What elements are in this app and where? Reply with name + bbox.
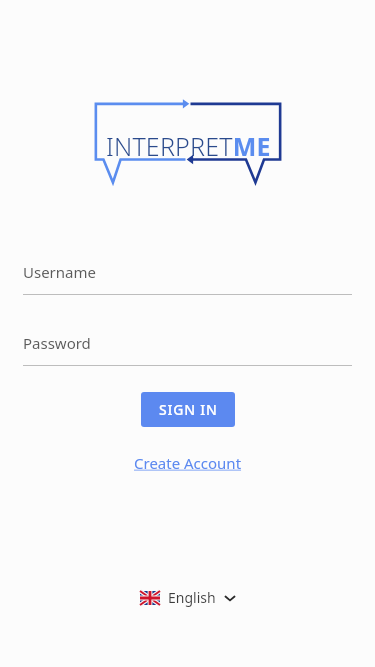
staticText: English xyxy=(168,588,216,607)
button[interactable]: Username xyxy=(23,262,352,295)
button[interactable]: Create Account xyxy=(128,450,248,476)
staticText: Username xyxy=(23,262,96,282)
staticText: SIGN IN xyxy=(159,400,218,419)
staticText: INTERPRETME xyxy=(106,129,271,163)
button[interactable]: Password xyxy=(23,333,352,366)
button[interactable]: SIGN IN xyxy=(141,392,235,427)
button[interactable]: English xyxy=(134,585,242,610)
staticText: Password xyxy=(23,333,91,353)
staticText: Create Account xyxy=(134,453,242,473)
